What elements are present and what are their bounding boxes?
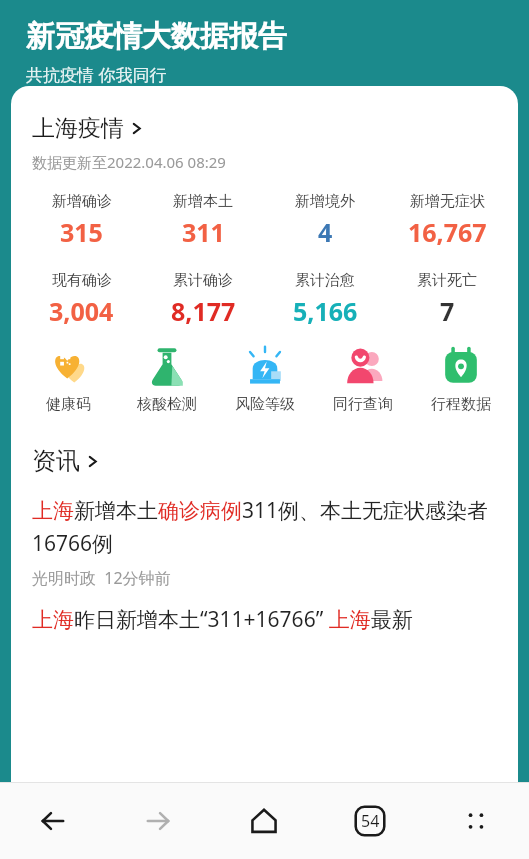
- button[interactable]: 行程数据: [412, 340, 510, 418]
- button[interactable]: Home: [211, 783, 317, 859]
- staticText: 上海新增本土确诊病例311例、本土无症状感染者16766例: [32, 496, 504, 557]
- button[interactable]: 健康码: [19, 340, 118, 418]
- staticText: 7: [440, 294, 455, 328]
- staticText: 上海疫情: [32, 114, 124, 143]
- button[interactable]: 风险等级: [216, 340, 314, 418]
- staticText: 行程数据: [431, 395, 491, 414]
- staticText: 16,767: [408, 215, 487, 249]
- staticText: 核酸检测: [137, 395, 197, 414]
- button[interactable]: 上海疫情: [32, 112, 150, 145]
- staticText: 311: [182, 215, 225, 249]
- button[interactable]: Tabs: 54: [317, 783, 423, 859]
- button[interactable]: 核酸检测: [118, 340, 216, 418]
- staticText: 54: [361, 810, 380, 832]
- button[interactable]: 累计治愈: [264, 269, 386, 330]
- staticText: 风险等级: [235, 395, 295, 414]
- button[interactable]: 现有确诊: [21, 269, 142, 330]
- button[interactable]: 新增确诊: [21, 190, 142, 251]
- button[interactable]: 上海昨日新增本土“311+16766” 上海最新: [32, 605, 504, 634]
- button[interactable]: 资讯: [32, 444, 106, 478]
- button[interactable]: 新增境外: [264, 190, 386, 251]
- staticText: 新增本土: [173, 192, 233, 211]
- button[interactable]: 同行查询: [314, 340, 412, 418]
- staticText: 累计治愈: [295, 271, 355, 290]
- button[interactable]: 累计确诊: [142, 269, 264, 330]
- staticText: 新冠疫情大数据报告: [26, 18, 287, 55]
- staticText: 资讯: [32, 446, 80, 476]
- button[interactable]: 新增无症状: [386, 190, 508, 251]
- staticText: 新增无症状: [410, 192, 485, 211]
- staticText: 现有确诊: [52, 271, 112, 290]
- button[interactable]: 上海新增本土确诊病例311例、本土无症状感染者16766例: [32, 496, 504, 589]
- button[interactable]: 累计死亡: [386, 269, 508, 330]
- staticText: 5,166: [293, 294, 358, 328]
- staticText: 315: [60, 215, 103, 249]
- button[interactable]: Back: [0, 783, 105, 859]
- staticText: 累计确诊: [173, 271, 233, 290]
- button[interactable]: Forward: [105, 783, 211, 859]
- staticText: 光明时政 12分钟前: [32, 567, 171, 589]
- staticText: 新增确诊: [52, 192, 112, 211]
- staticText: 数据更新至2022.04.06 08:29: [32, 152, 226, 172]
- staticText: 健康码: [46, 395, 91, 414]
- staticText: 累计死亡: [417, 271, 477, 290]
- staticText: 共抗疫情 你我同行: [26, 63, 167, 86]
- button[interactable]: 新增本土: [142, 190, 264, 251]
- staticText: 3,004: [49, 294, 114, 328]
- staticText: 上海昨日新增本土“311+16766” 上海最新: [32, 605, 413, 634]
- staticText: 4: [318, 215, 333, 249]
- staticText: 同行查询: [333, 395, 393, 414]
- staticText: 新增境外: [295, 192, 355, 211]
- button[interactable]: Menu: [423, 783, 529, 859]
- staticText: 8,177: [171, 294, 236, 328]
